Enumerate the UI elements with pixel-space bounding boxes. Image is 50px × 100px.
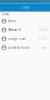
- staticText: 10:14: [45, 1, 49, 3]
- staticText: Chats: [2, 12, 9, 16]
- staticText: Jonathan Reed: [8, 46, 29, 49]
- button[interactable]: Anna: [0, 17, 50, 26]
- staticText: 11:02: [39, 37, 48, 40]
- staticText: Chats: [21, 6, 28, 9]
- staticText: ◂▸: [42, 1, 44, 2]
- staticText: Michael K.: [8, 28, 22, 32]
- button[interactable]: Michael K.: [0, 26, 50, 34]
- staticText: Design team: [8, 37, 25, 40]
- button[interactable]: Design team: [0, 34, 50, 43]
- staticText: Anna: [8, 19, 15, 23]
- button[interactable]: Jonathan Reed: [0, 43, 50, 52]
- staticText: Mon: [42, 46, 48, 49]
- staticText: 12:40: [39, 28, 48, 32]
